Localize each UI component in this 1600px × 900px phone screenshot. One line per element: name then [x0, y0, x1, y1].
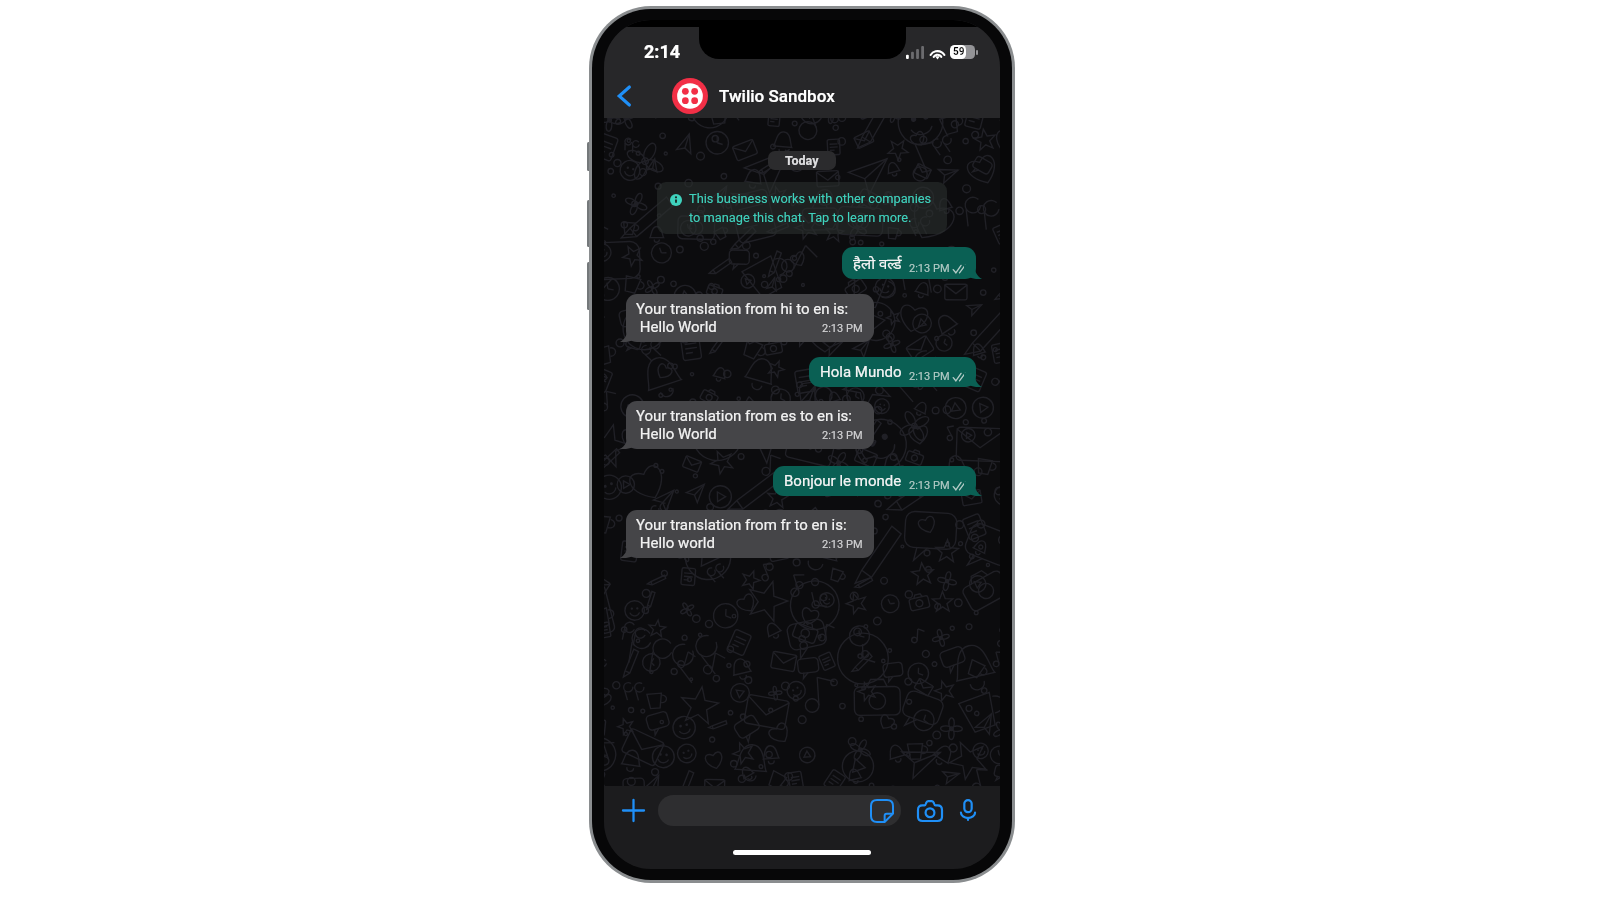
button[interactable]: Hola Mundo [809, 357, 976, 387]
button[interactable]: Your translation from es to en is: [626, 401, 874, 449]
staticText: Hello World [636, 425, 717, 443]
button[interactable]: Camera [914, 794, 946, 826]
staticText: Hello world [636, 534, 715, 552]
button[interactable]: Message [658, 795, 901, 826]
staticText: हैलो वर्ल्ड [853, 253, 902, 273]
staticText: Bonjour le monde [784, 472, 902, 490]
staticText: Hello World [636, 318, 717, 336]
staticText: 2:13 PM [822, 538, 863, 551]
staticText: Your translation from hi to en is: [636, 300, 849, 318]
staticText: 2:14 [644, 41, 681, 62]
button[interactable]: Voice message [954, 796, 982, 824]
staticText: 59 [953, 46, 965, 58]
button[interactable]: Stickers [870, 799, 894, 823]
staticText: 2:13 PM [822, 429, 863, 442]
button[interactable]: Back [607, 79, 641, 113]
staticText: 2:13 PM [909, 479, 950, 492]
button[interactable]: Your translation from hi to en is: [626, 294, 874, 342]
button[interactable]: Attach [616, 793, 650, 827]
staticText: 2:13 PM [909, 370, 950, 383]
staticText: 2:13 PM [822, 322, 863, 335]
button[interactable]: Your translation from fr to en is: [626, 510, 874, 558]
button[interactable]: Bonjour le monde [773, 466, 976, 496]
staticText: Twilio Sandbox [719, 86, 835, 106]
staticText: Today [785, 153, 819, 168]
staticText: This business works with other companies… [689, 191, 932, 225]
button[interactable]: This business works with other companies… [657, 182, 947, 234]
staticText: Your translation from fr to en is: [636, 516, 847, 534]
staticText: Your translation from es to en is: [636, 407, 852, 425]
button[interactable]: हैलो वर्ल्ड [842, 247, 976, 279]
staticText: 2:13 PM [909, 262, 950, 275]
staticText: Hola Mundo [820, 363, 902, 381]
